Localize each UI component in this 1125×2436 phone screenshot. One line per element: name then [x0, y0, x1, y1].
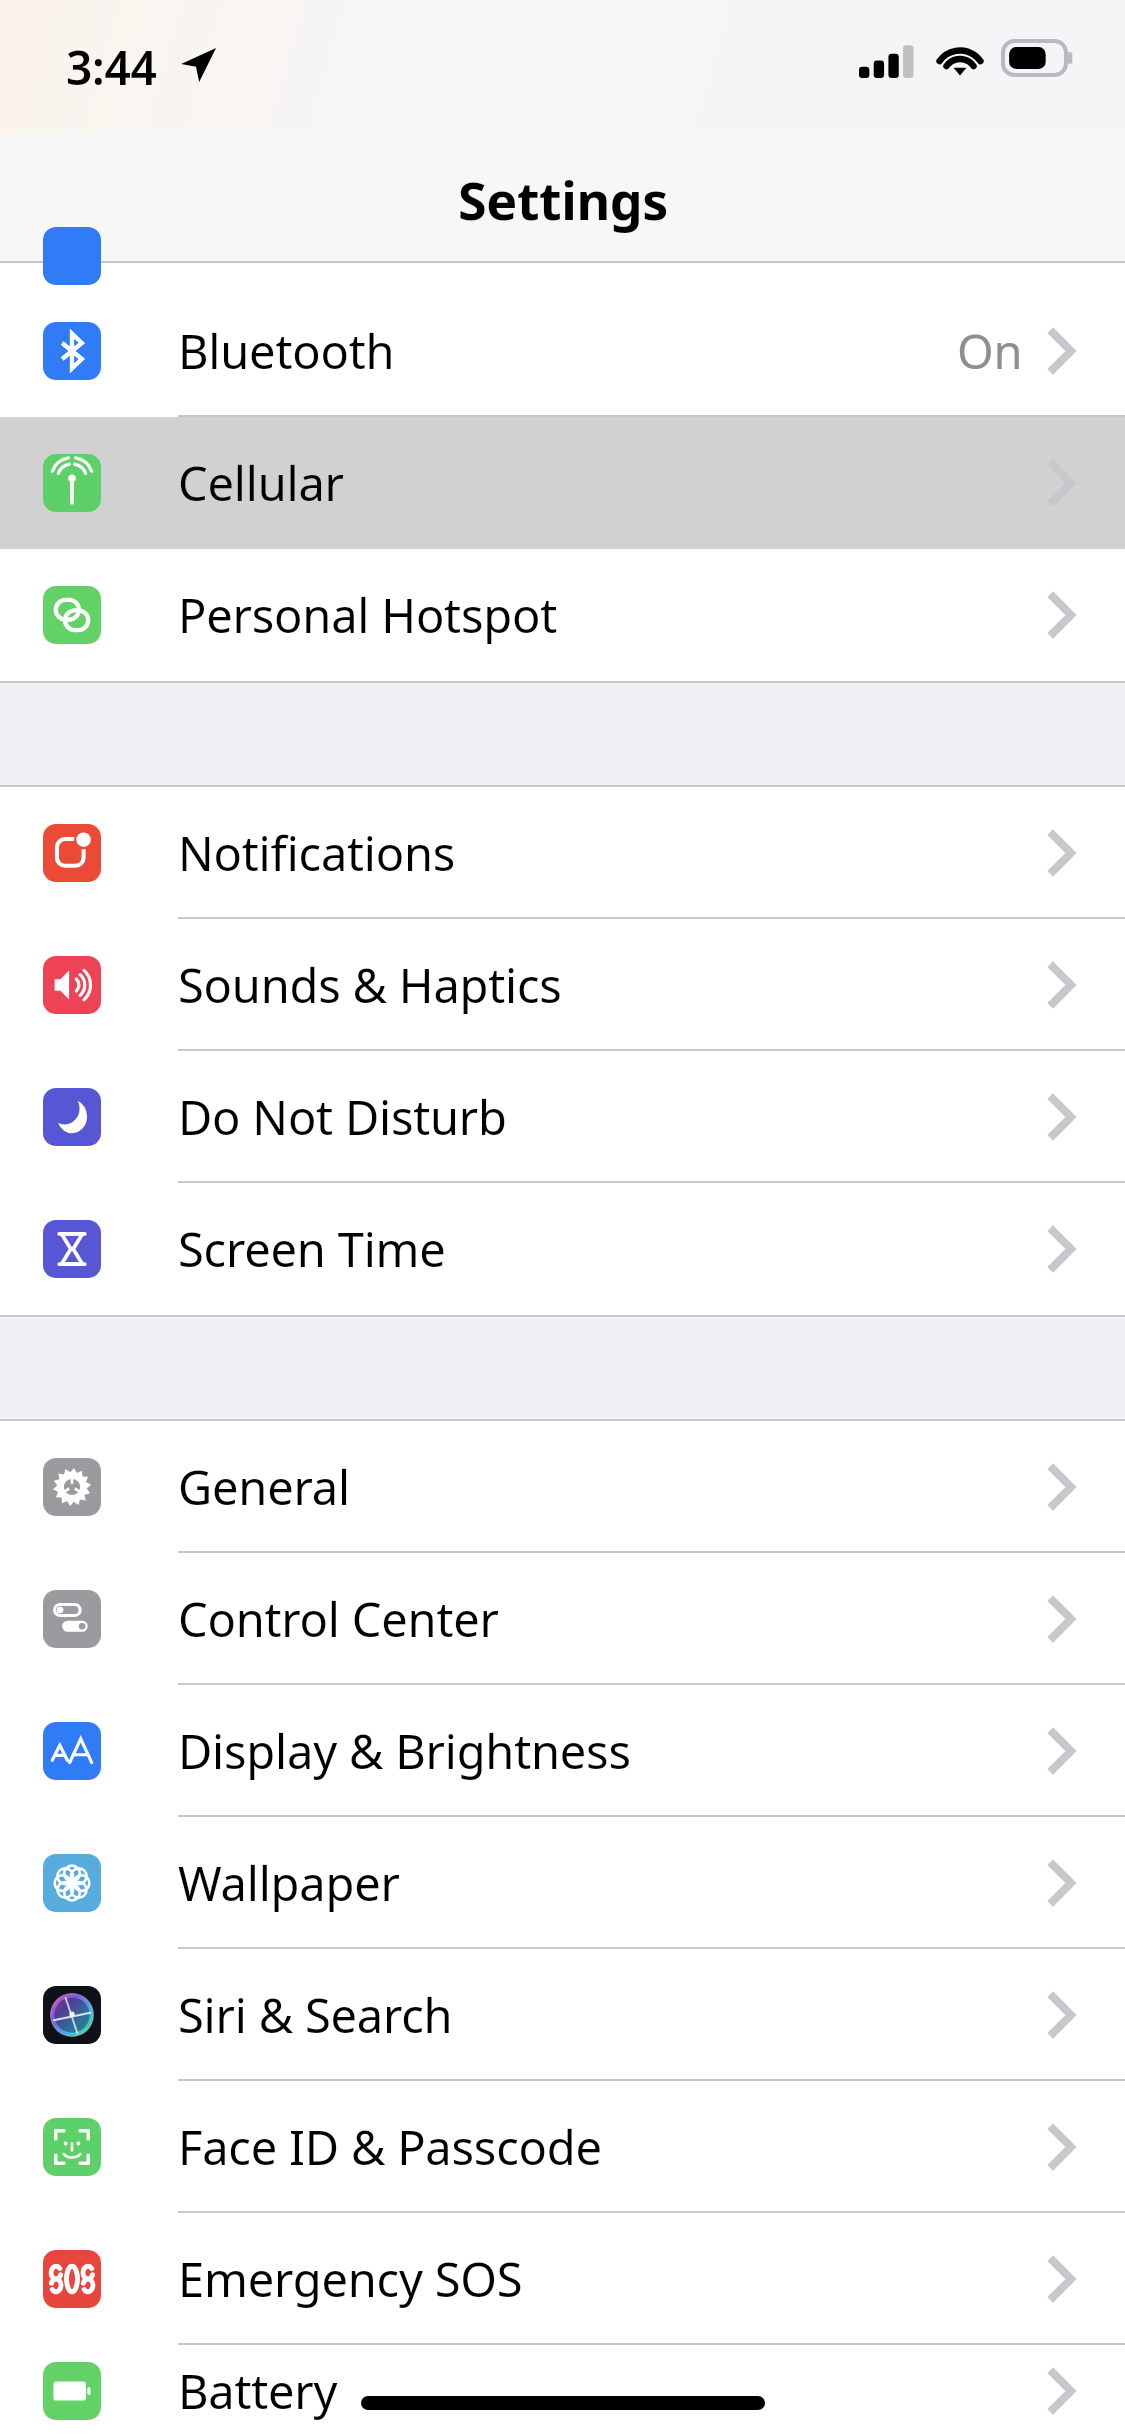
staticText: 3:44 — [66, 36, 157, 99]
button[interactable]: Display & Brightness — [0, 1685, 1125, 1817]
staticText: Face ID & Passcode — [178, 2115, 602, 2179]
button[interactable]: Cellular — [0, 417, 1125, 549]
staticText: Display & Brightness — [178, 1719, 631, 1783]
staticText: Settings — [458, 164, 668, 235]
staticText: Battery — [178, 2359, 338, 2423]
staticText: Emergency SOS — [178, 2247, 523, 2311]
staticText: Notifications — [178, 821, 456, 885]
button[interactable]: Emergency SOS — [0, 2213, 1125, 2345]
staticText: Bluetooth — [178, 319, 395, 383]
button[interactable] — [0, 263, 1125, 285]
button[interactable]: Siri & Search — [0, 1949, 1125, 2081]
button[interactable]: Sounds & Haptics — [0, 919, 1125, 1051]
button[interactable]: Face ID & Passcode — [0, 2081, 1125, 2213]
staticText: Control Center — [178, 1587, 499, 1651]
staticText: Personal Hotspot — [178, 583, 557, 647]
staticText: Do Not Disturb — [178, 1085, 507, 1149]
button[interactable]: Control Center — [0, 1553, 1125, 1685]
button[interactable]: Notifications — [0, 787, 1125, 919]
button[interactable]: Personal Hotspot — [0, 549, 1125, 681]
staticText: Cellular — [178, 451, 344, 515]
button[interactable]: General — [0, 1421, 1125, 1553]
staticText: Siri & Search — [178, 1983, 453, 2047]
button[interactable]: Wallpaper — [0, 1817, 1125, 1949]
button[interactable]: Battery — [0, 2345, 1125, 2436]
button[interactable]: Bluetooth — [0, 285, 1125, 417]
staticText: Wallpaper — [178, 1851, 400, 1915]
staticText: On — [957, 319, 1023, 383]
button[interactable]: Screen Time — [0, 1183, 1125, 1315]
staticText: Screen Time — [178, 1217, 446, 1281]
staticText: General — [178, 1455, 350, 1519]
staticText: Sounds & Haptics — [178, 953, 562, 1017]
button[interactable]: Do Not Disturb — [0, 1051, 1125, 1183]
